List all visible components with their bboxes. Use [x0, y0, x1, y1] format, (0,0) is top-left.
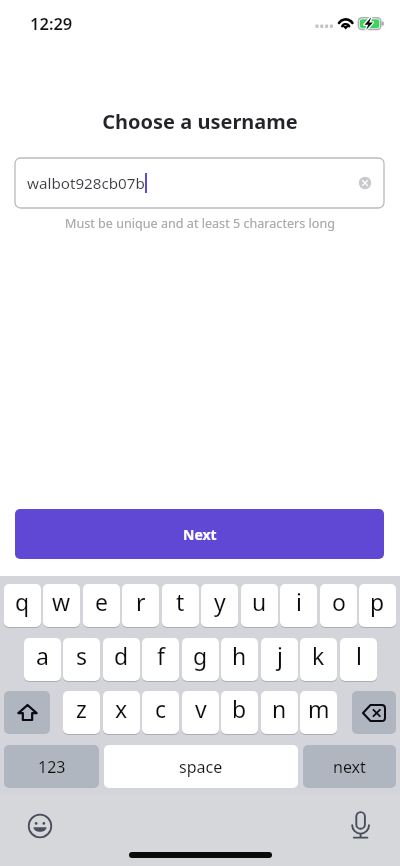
- button[interactable]: f: [142, 638, 179, 682]
- button[interactable]: h: [221, 638, 258, 682]
- staticText: w: [52, 586, 71, 617]
- staticText: x: [115, 693, 128, 724]
- button[interactable]: g: [182, 638, 219, 682]
- button[interactable]: Voice input: [346, 798, 382, 834]
- staticText: s: [76, 640, 88, 671]
- button[interactable]: walbot928cb07b: [15, 158, 384, 208]
- button[interactable]: o: [320, 584, 357, 628]
- staticText: walbot928cb07b: [27, 173, 145, 194]
- button[interactable]: next: [303, 745, 396, 788]
- staticText: t: [176, 586, 185, 617]
- staticText: space: [179, 756, 223, 778]
- button[interactable]: r: [122, 584, 159, 628]
- button[interactable]: j: [261, 638, 298, 682]
- staticText: Choose a username: [0, 108, 400, 135]
- button[interactable]: n: [261, 691, 298, 735]
- staticText: u: [252, 586, 267, 617]
- staticText: v: [195, 693, 207, 724]
- staticText: Must be unique and at least 5 characters…: [0, 215, 400, 232]
- staticText: l: [356, 640, 362, 671]
- button[interactable]: space: [104, 745, 298, 788]
- button[interactable]: Backspace: [352, 691, 396, 734]
- button[interactable]: p: [359, 584, 396, 628]
- button[interactable]: k: [300, 638, 337, 682]
- staticText: k: [312, 640, 325, 671]
- button[interactable]: d: [103, 638, 140, 682]
- staticText: o: [332, 586, 346, 617]
- staticText: d: [114, 640, 129, 671]
- staticText: next: [333, 756, 366, 778]
- button[interactable]: a: [24, 638, 61, 682]
- button[interactable]: Emoji keyboard: [24, 810, 56, 842]
- staticText: e: [95, 586, 108, 617]
- staticText: f: [157, 640, 165, 671]
- staticText: i: [296, 586, 302, 617]
- button[interactable]: y: [201, 584, 238, 628]
- button[interactable]: 123: [4, 745, 99, 788]
- button[interactable]: u: [241, 584, 278, 628]
- button[interactable]: v: [182, 691, 219, 735]
- button[interactable]: c: [142, 691, 179, 735]
- button[interactable]: Clear text: [352, 170, 378, 196]
- staticText: j: [277, 640, 283, 671]
- button[interactable]: Shift: [4, 691, 50, 734]
- staticText: h: [232, 640, 247, 671]
- staticText: c: [155, 693, 167, 724]
- button[interactable]: w: [43, 584, 80, 628]
- button[interactable]: i: [280, 584, 317, 628]
- staticText: Next: [183, 525, 217, 544]
- staticText: b: [232, 693, 247, 724]
- button[interactable]: s: [63, 638, 100, 682]
- staticText: a: [36, 640, 49, 671]
- staticText: p: [370, 586, 385, 617]
- button[interactable]: q: [4, 584, 41, 628]
- button[interactable]: Next: [15, 509, 384, 559]
- button[interactable]: z: [63, 691, 100, 735]
- staticText: 123: [38, 756, 66, 778]
- button[interactable]: e: [83, 584, 120, 628]
- staticText: n: [272, 693, 287, 724]
- button[interactable]: m: [300, 691, 337, 735]
- staticText: y: [214, 586, 226, 617]
- staticText: q: [15, 586, 30, 617]
- staticText: 12:29: [30, 12, 73, 34]
- button[interactable]: l: [340, 638, 377, 682]
- staticText: z: [76, 693, 87, 724]
- button[interactable]: x: [103, 691, 140, 735]
- staticText: r: [136, 586, 146, 617]
- button[interactable]: b: [221, 691, 258, 735]
- staticText: m: [308, 693, 330, 724]
- staticText: g: [193, 640, 208, 671]
- button[interactable]: t: [162, 584, 199, 628]
